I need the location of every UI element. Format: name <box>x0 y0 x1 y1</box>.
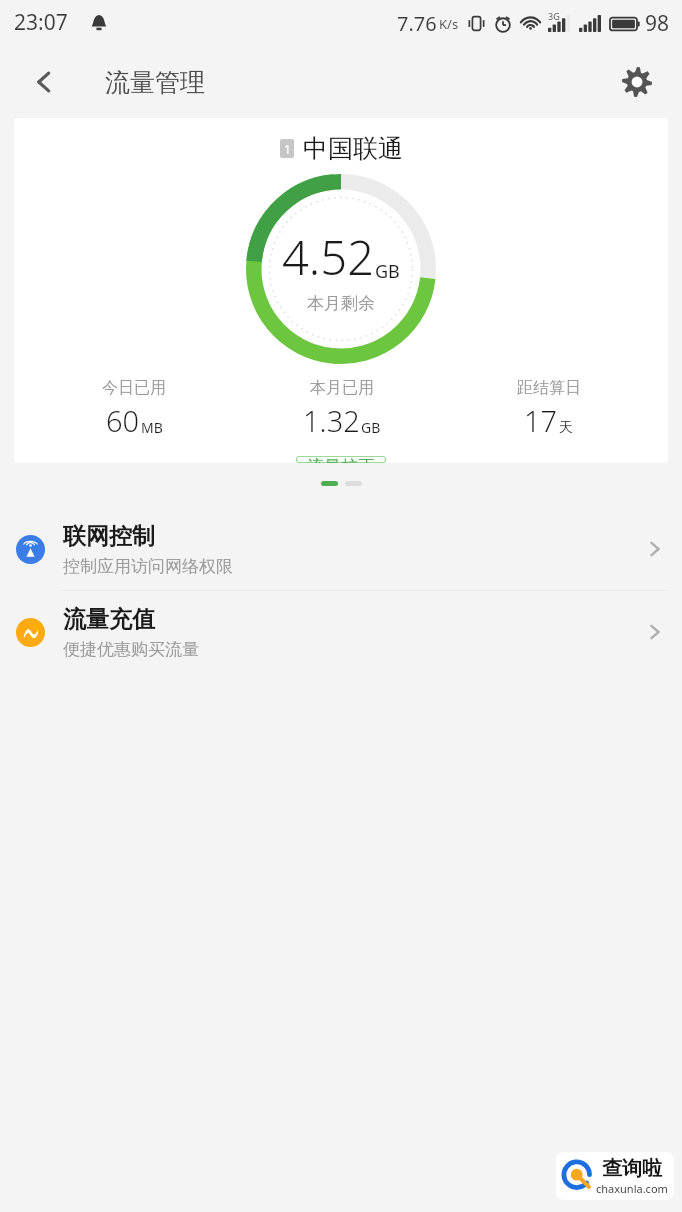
staticText: 7.76 <box>397 10 437 37</box>
staticText: MB <box>141 418 163 437</box>
staticText: 流量管理 <box>105 67 205 98</box>
button[interactable]: 联网控制 <box>0 508 682 591</box>
staticText: 本月已用 <box>310 378 374 398</box>
button[interactable]: 流量充值 <box>0 591 682 673</box>
staticText: GB <box>361 418 381 437</box>
staticText: 4.52 <box>282 225 374 289</box>
staticText: 流量充值 <box>63 605 155 634</box>
staticText: 17 <box>524 401 558 440</box>
staticText: 23:07 <box>14 8 68 37</box>
staticText: 联网控制 <box>63 522 155 551</box>
staticText: chaxunla.com <box>596 1181 668 1196</box>
staticText: 3G <box>548 10 560 22</box>
staticText: 中国联通 <box>303 133 403 164</box>
staticText: 天 <box>559 419 573 437</box>
staticText: 便捷优惠购买流量 <box>63 639 199 660</box>
button[interactable]: Settings <box>614 59 660 105</box>
staticText: K/s <box>439 15 459 33</box>
staticText: GB <box>375 259 400 284</box>
staticText: 98 <box>645 9 670 38</box>
button[interactable]: Back <box>22 60 66 104</box>
staticText: 查询啦 <box>602 1156 662 1181</box>
staticText: 距结算日 <box>517 378 581 398</box>
button[interactable]: 流量校正 <box>296 456 386 463</box>
staticText: 1.32 <box>303 401 360 440</box>
staticText: 1 <box>284 141 291 157</box>
staticText: 流量校正 <box>307 456 375 463</box>
staticText: 今日已用 <box>102 378 166 398</box>
staticText: 控制应用访问网络权限 <box>63 556 233 577</box>
staticText: 60 <box>106 401 140 440</box>
staticText: 本月剩余 <box>307 293 375 314</box>
